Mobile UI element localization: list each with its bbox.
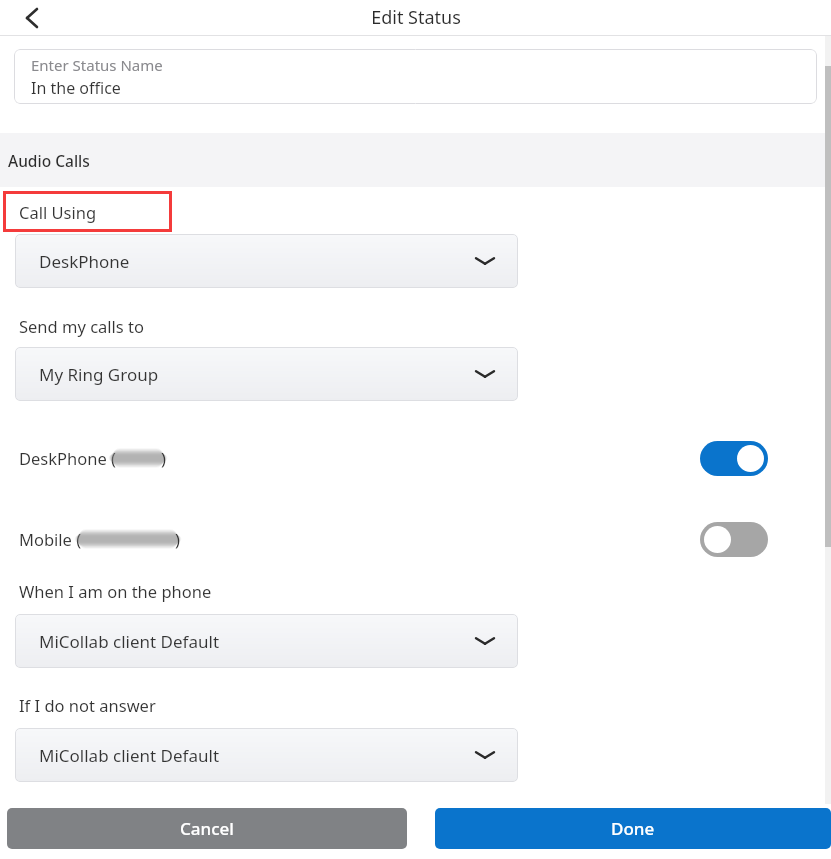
button[interactable]: MiCollab client Default xyxy=(15,614,518,668)
staticText: Enter Status Name xyxy=(31,55,163,75)
staticText: MiCollab client Default xyxy=(39,744,470,767)
staticText: Send my calls to xyxy=(19,315,144,337)
staticText: MiCollab client Default xyxy=(39,630,470,653)
staticText: Edit Status xyxy=(371,5,461,30)
button[interactable]: Mobile disabled xyxy=(700,522,768,557)
staticText: ) xyxy=(161,447,166,469)
staticText: My Ring Group xyxy=(39,363,470,386)
staticText: In the office xyxy=(31,77,121,99)
button[interactable]: DeskPhone enabled xyxy=(700,441,768,476)
staticText: DeskPhone ( xyxy=(19,447,116,469)
staticText: Done xyxy=(611,817,655,840)
button[interactable]: Cancel xyxy=(7,808,407,849)
staticText: Cancel xyxy=(180,817,234,840)
button[interactable]: MiCollab client Default xyxy=(15,728,518,782)
button[interactable]: My Ring Group xyxy=(15,347,518,401)
staticText: Audio Calls xyxy=(8,150,90,171)
button[interactable]: Call Using xyxy=(3,191,172,232)
button[interactable]: DeskPhone xyxy=(15,234,518,288)
button[interactable]: Enter Status Name xyxy=(14,49,817,104)
staticText: Mobile ( xyxy=(19,528,82,550)
button[interactable]: Mobile ( xyxy=(0,514,831,564)
staticText: When I am on the phone xyxy=(19,580,212,602)
staticText: DeskPhone xyxy=(39,250,470,273)
button[interactable]: DeskPhone ( xyxy=(0,433,831,483)
staticText: ) xyxy=(175,528,180,550)
staticText: Call Using xyxy=(19,201,97,223)
staticText: If I do not answer xyxy=(19,694,156,716)
button[interactable]: Done xyxy=(435,808,831,849)
button[interactable]: Back xyxy=(8,0,52,35)
